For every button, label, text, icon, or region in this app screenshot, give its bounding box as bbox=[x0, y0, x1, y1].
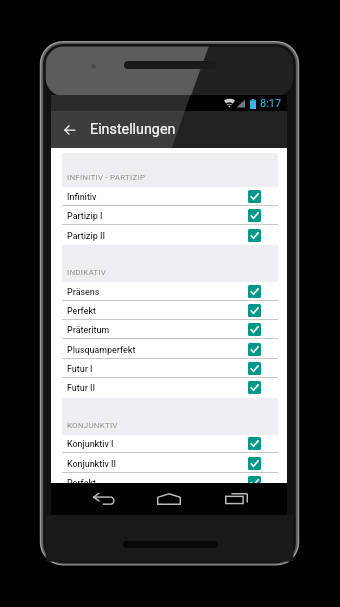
staticText: Partizip I bbox=[67, 211, 103, 221]
button[interactable]: Futur I bbox=[51, 359, 287, 378]
staticText: Konjunktiv I bbox=[67, 439, 114, 449]
staticText: Konjunktiv II bbox=[67, 459, 117, 469]
staticText: Plusquamperfekt bbox=[67, 498, 136, 508]
staticText: Futur II bbox=[67, 383, 96, 393]
staticText: Perfekt bbox=[67, 306, 96, 316]
button[interactable]: Konjunktiv I bbox=[51, 434, 287, 453]
button[interactable]: Konjunktiv II bbox=[51, 454, 287, 473]
button[interactable]: Back bbox=[51, 111, 88, 148]
button[interactable]: Plusquamperfekt bbox=[51, 493, 287, 512]
staticText: Futur I bbox=[67, 364, 93, 374]
staticText: INFINITIV - PARTIZIP bbox=[67, 173, 146, 182]
staticText: Präsens bbox=[67, 287, 100, 297]
button[interactable]: Infinitiv bbox=[51, 187, 287, 206]
button[interactable]: Partizip II bbox=[51, 226, 287, 245]
staticText: Einstellungen bbox=[90, 121, 176, 138]
staticText: INDIKATIV bbox=[67, 268, 107, 277]
button[interactable]: Futur II bbox=[51, 378, 287, 397]
staticText: KONJUNKTIV bbox=[67, 421, 118, 430]
staticText: Präteritum bbox=[67, 325, 110, 335]
button[interactable]: Recent apps bbox=[220, 487, 252, 511]
button[interactable]: Perfekt bbox=[51, 301, 287, 320]
staticText: Partizip II bbox=[67, 231, 105, 241]
button[interactable]: Home bbox=[153, 487, 185, 511]
button[interactable]: Back bbox=[88, 487, 120, 511]
button[interactable]: Präsens bbox=[51, 282, 287, 301]
button[interactable]: Partizip I bbox=[51, 206, 287, 225]
staticText: Plusquamperfekt bbox=[67, 345, 136, 355]
staticText: Infinitiv bbox=[67, 192, 97, 202]
button[interactable]: Perfekt bbox=[51, 473, 287, 492]
button[interactable]: Präteritum bbox=[51, 320, 287, 339]
button[interactable]: Plusquamperfekt bbox=[51, 340, 287, 359]
staticText: 8:17 bbox=[260, 97, 282, 110]
staticText: Perfekt bbox=[67, 478, 96, 488]
